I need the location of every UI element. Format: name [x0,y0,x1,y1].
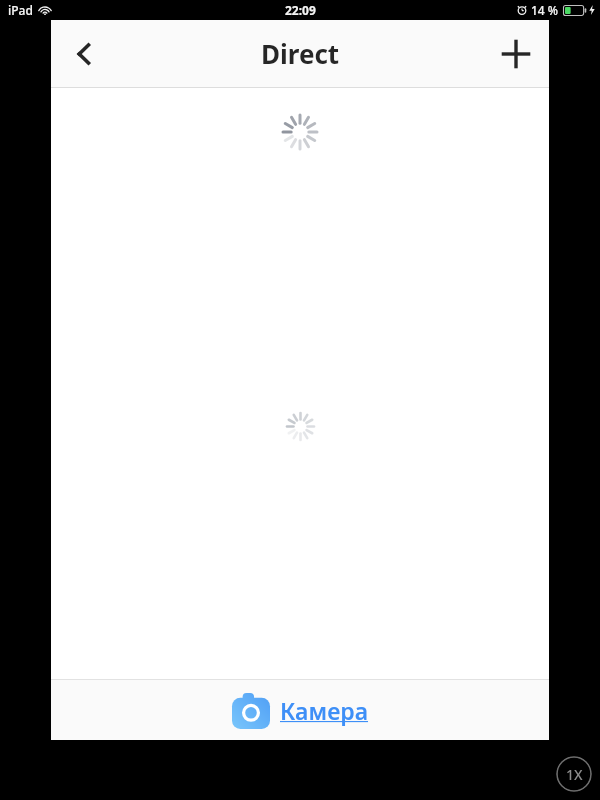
staticText: 14 % [531,2,559,18]
button[interactable]: Back [51,20,117,87]
staticText: 1X [566,765,583,784]
staticText: iPad [8,2,33,18]
button[interactable]: Scale 1X [556,756,592,792]
button[interactable]: New message [483,20,549,87]
button[interactable]: Камера [226,687,375,733]
staticText: Камера [280,695,369,726]
staticText: 22:09 [285,2,316,18]
staticText: Direct [261,36,340,71]
